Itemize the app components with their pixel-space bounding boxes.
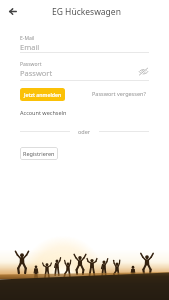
button[interactable]: Registrieren [20, 147, 58, 160]
staticText: Passwort vergessen? [92, 90, 146, 97]
button[interactable]: Jetzt anmelden [20, 88, 65, 101]
staticText: Passwort [20, 61, 42, 68]
button[interactable]: Show password [138, 66, 149, 77]
button[interactable]: Back [4, 3, 21, 20]
staticText: Account wechseln [20, 109, 67, 116]
staticText: Passwort [20, 68, 53, 78]
staticText: Jetzt anmelden [24, 91, 62, 98]
staticText: Email [20, 42, 40, 52]
button[interactable]: Account wechseln [20, 109, 67, 116]
button[interactable]: Passwort vergessen? [92, 90, 146, 97]
staticText: Registrieren [23, 150, 55, 157]
staticText: EG Hückeswagen [52, 6, 121, 18]
staticText: oder [78, 128, 91, 135]
staticText: E-Mail [20, 35, 35, 42]
